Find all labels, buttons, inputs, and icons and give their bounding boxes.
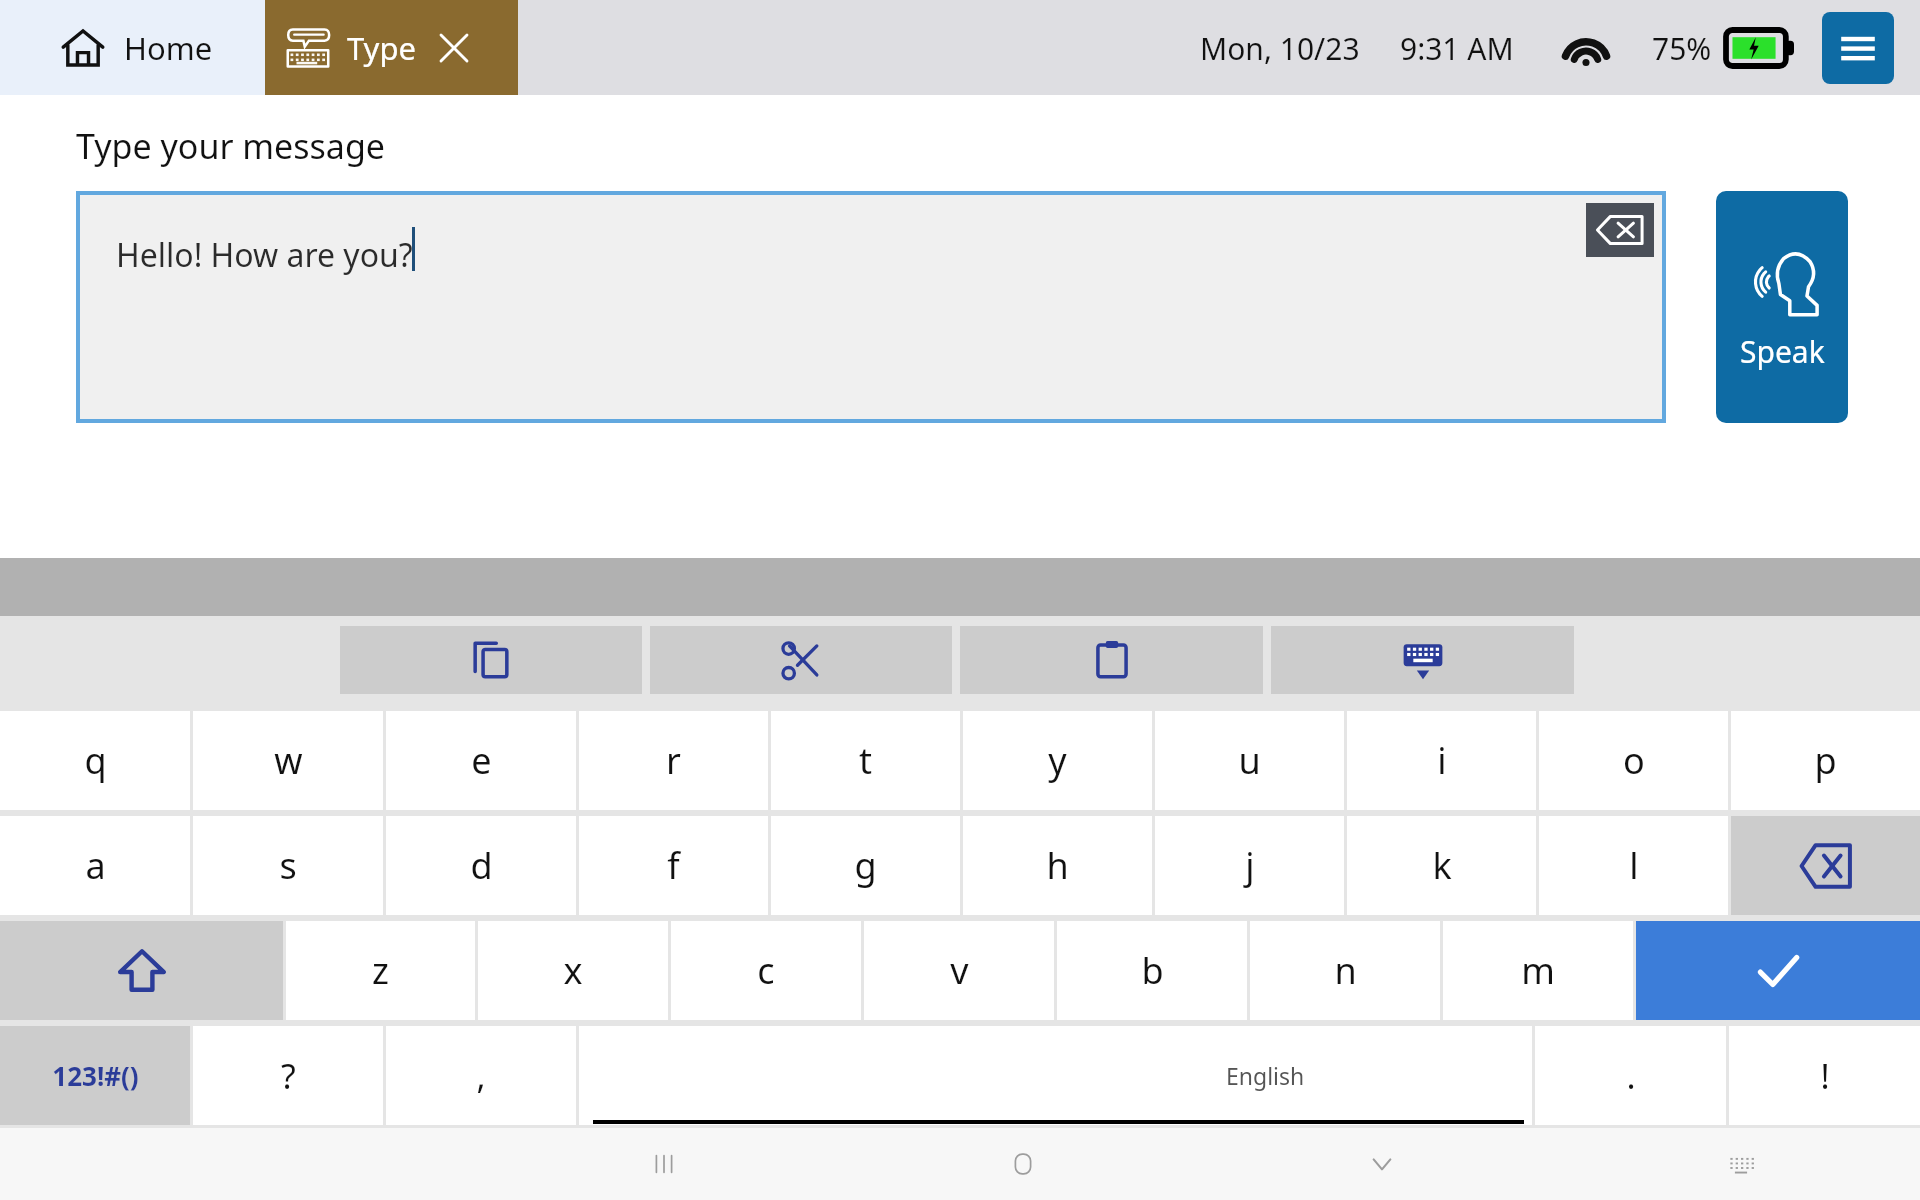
- staticText: 9:31 AM: [1400, 28, 1514, 69]
- button[interactable]: Speak: [1716, 191, 1848, 423]
- button[interactable]: v: [864, 921, 1054, 1020]
- staticText: a: [85, 841, 106, 890]
- staticText: q: [84, 736, 107, 785]
- button[interactable]: Copy: [340, 626, 642, 694]
- button[interactable]: ?: [193, 1026, 383, 1125]
- button[interactable]: q: [0, 711, 190, 810]
- other: Wi-Fi: [1560, 22, 1612, 74]
- staticText: v: [950, 946, 969, 995]
- staticText: c: [757, 946, 775, 995]
- button[interactable]: 123!#(): [0, 1026, 190, 1125]
- button[interactable]: e: [386, 711, 576, 810]
- button[interactable]: g: [771, 816, 960, 915]
- button[interactable]: !: [1729, 1026, 1920, 1125]
- button[interactable]: u: [1155, 711, 1344, 810]
- staticText: n: [1334, 946, 1357, 995]
- staticText: y: [1048, 736, 1067, 785]
- staticText: s: [279, 841, 297, 890]
- staticText: p: [1814, 736, 1837, 785]
- staticText: t: [859, 736, 872, 785]
- staticText: Hello! How are you?: [116, 233, 413, 277]
- button[interactable]: ,: [386, 1026, 576, 1125]
- staticText: i: [1437, 736, 1447, 785]
- button[interactable]: Home: [843, 1128, 1202, 1200]
- staticText: u: [1238, 736, 1261, 785]
- button[interactable]: y: [963, 711, 1152, 810]
- staticText: English: [1226, 1060, 1305, 1091]
- button[interactable]: Cut: [650, 626, 952, 694]
- button[interactable]: k: [1347, 816, 1536, 915]
- staticText: 75%: [1652, 28, 1712, 69]
- staticText: g: [854, 841, 877, 890]
- staticText: m: [1521, 946, 1555, 995]
- button[interactable]: b: [1057, 921, 1247, 1020]
- button[interactable]: .: [1535, 1026, 1726, 1125]
- button[interactable]: Back: [1202, 1128, 1561, 1200]
- button[interactable]: Menu: [1822, 12, 1894, 84]
- staticText: h: [1046, 841, 1069, 890]
- staticText: r: [666, 736, 681, 785]
- button[interactable]: d: [386, 816, 576, 915]
- staticText: o: [1623, 736, 1645, 785]
- staticText: f: [667, 841, 680, 890]
- staticText: w: [274, 736, 303, 785]
- staticText: Type your message: [76, 123, 385, 169]
- button[interactable]: Shift: [0, 921, 283, 1020]
- other: Battery 75% charging: [1726, 30, 1794, 66]
- staticText: j: [1245, 841, 1255, 890]
- button[interactable]: Hello! How are you?: [80, 195, 1662, 419]
- button[interactable]: Home: [0, 0, 265, 95]
- button[interactable]: o: [1539, 711, 1728, 810]
- staticText: Speak: [1740, 331, 1825, 372]
- button[interactable]: Hide keyboard: [1271, 626, 1574, 694]
- button[interactable]: Recents: [484, 1128, 843, 1200]
- button[interactable]: Paste: [960, 626, 1263, 694]
- staticText: .: [1626, 1053, 1636, 1099]
- staticText: l: [1629, 841, 1639, 890]
- button[interactable]: Keyboard: [1561, 1128, 1920, 1200]
- staticText: d: [470, 841, 493, 890]
- button[interactable]: h: [963, 816, 1152, 915]
- button[interactable]: Type: [265, 0, 518, 95]
- button[interactable]: n: [1250, 921, 1440, 1020]
- staticText: Mon, 10/23: [1200, 28, 1360, 69]
- button[interactable]: Enter: [1636, 921, 1920, 1020]
- staticText: e: [471, 736, 492, 785]
- button[interactable]: c: [671, 921, 861, 1020]
- staticText: !: [1820, 1053, 1830, 1099]
- button[interactable]: w: [193, 711, 383, 810]
- staticText: 123!#(): [52, 1058, 139, 1093]
- button[interactable]: t: [771, 711, 960, 810]
- button[interactable]: s: [193, 816, 383, 915]
- button[interactable]: j: [1155, 816, 1344, 915]
- button[interactable]: p: [1731, 711, 1920, 810]
- button[interactable]: a: [0, 816, 190, 915]
- staticText: k: [1432, 841, 1452, 890]
- button[interactable]: f: [579, 816, 768, 915]
- staticText: z: [372, 946, 389, 995]
- button[interactable]: z: [286, 921, 475, 1020]
- button[interactable]: m: [1443, 921, 1633, 1020]
- button[interactable]: i: [1347, 711, 1536, 810]
- button[interactable]: x: [478, 921, 668, 1020]
- staticText: b: [1141, 946, 1164, 995]
- staticText: ?: [281, 1053, 296, 1099]
- button[interactable]: Close Type tab: [434, 28, 474, 68]
- button[interactable]: Clear text: [1586, 203, 1654, 257]
- button[interactable]: Backspace: [1731, 816, 1920, 915]
- staticText: x: [563, 946, 583, 995]
- staticText: ,: [476, 1053, 486, 1099]
- staticText: Type: [347, 27, 416, 69]
- staticText: Home: [124, 27, 213, 69]
- button[interactable]: l: [1539, 816, 1728, 915]
- button[interactable]: r: [579, 711, 768, 810]
- button[interactable]: Space: [579, 1026, 1532, 1125]
